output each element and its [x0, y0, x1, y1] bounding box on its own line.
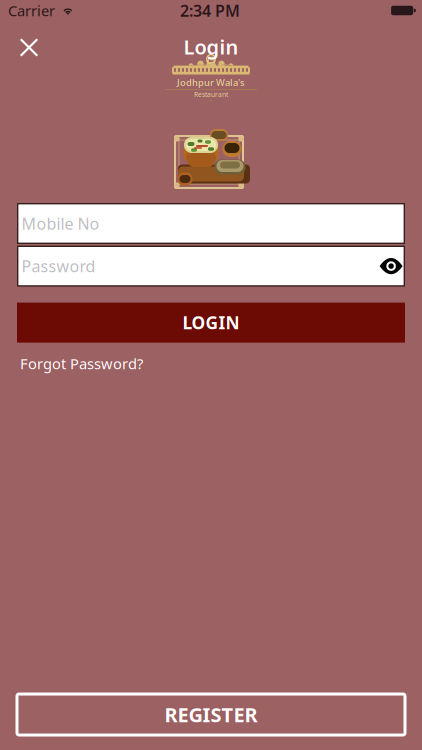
staticText: Jodhpur Wala's	[177, 76, 245, 89]
button[interactable]: Forgot Password?	[20, 354, 143, 374]
button[interactable]: REGISTER	[17, 694, 405, 735]
staticText: Restaurant	[194, 90, 228, 99]
staticText: Password	[21, 255, 95, 277]
button[interactable]: LOGIN	[17, 303, 405, 343]
staticText: Forgot Password?	[20, 354, 143, 373]
staticText: Login	[183, 33, 238, 60]
button[interactable]: Close	[10, 30, 48, 64]
staticText: 2:34 PM	[180, 0, 240, 21]
staticText: JW	[207, 55, 214, 62]
staticText: LOGIN	[182, 311, 239, 334]
staticText: Carrier	[8, 1, 55, 20]
staticText: Mobile No	[21, 213, 99, 234]
staticText: REGISTER	[164, 701, 257, 728]
button[interactable]: Show password	[380, 259, 404, 274]
